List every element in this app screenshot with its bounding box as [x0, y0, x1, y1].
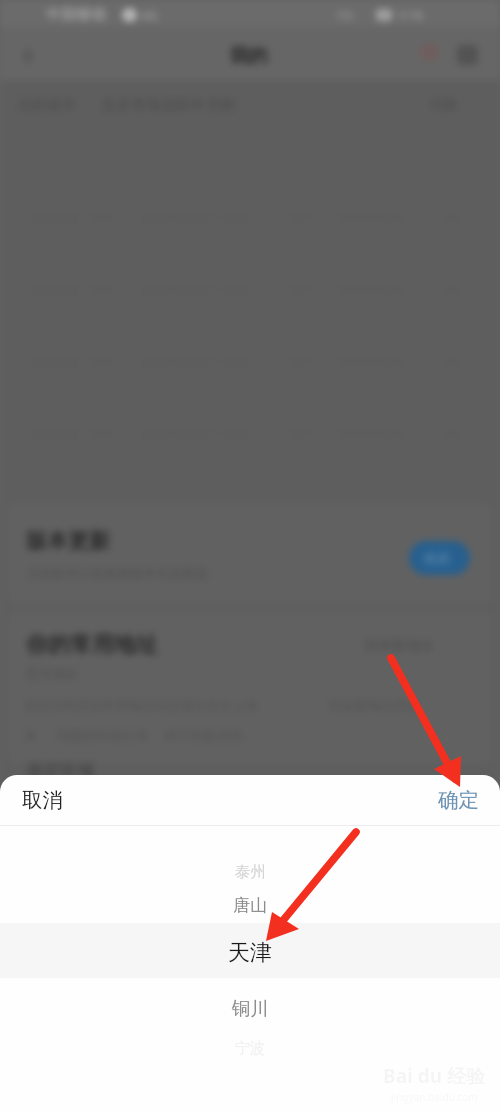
button[interactable]: 检测	[409, 541, 470, 575]
button[interactable]: More options	[450, 36, 484, 70]
button[interactable]: 确定	[418, 775, 500, 825]
staticText: 添加新地址	[364, 637, 434, 655]
staticText: 版本更新	[26, 528, 110, 554]
staticText: 添加新地址按钮	[328, 697, 419, 713]
staticText: 选定区域	[26, 760, 94, 781]
staticText: 宁波	[235, 1039, 265, 1058]
button[interactable]: 天津	[0, 937, 500, 969]
button[interactable]: 添加新地址	[356, 630, 468, 660]
staticText: 中国移动	[46, 5, 106, 24]
button[interactable]	[8, 612, 492, 764]
staticText: 取消	[22, 787, 63, 813]
staticText: 确定	[438, 787, 479, 813]
staticText: 检测	[424, 550, 450, 566]
staticText: 你的常用地址	[26, 631, 158, 659]
button[interactable]: 铜川	[0, 992, 500, 1024]
button[interactable]: 泰州	[0, 856, 500, 888]
staticText: 唐山	[233, 895, 267, 916]
staticText: 天津	[228, 939, 272, 967]
button[interactable]	[8, 503, 492, 603]
staticText: Bai du 经验	[383, 1063, 485, 1089]
staticText: 15:	[336, 6, 355, 24]
button[interactable]: 唐山	[0, 889, 500, 921]
staticText: 4G	[141, 6, 158, 24]
staticText: 51%	[398, 6, 424, 24]
button[interactable]: 取消	[0, 775, 83, 825]
staticText: 我的	[230, 44, 268, 68]
staticText: 铜川	[232, 997, 269, 1020]
staticText: 泰州	[235, 862, 266, 882]
